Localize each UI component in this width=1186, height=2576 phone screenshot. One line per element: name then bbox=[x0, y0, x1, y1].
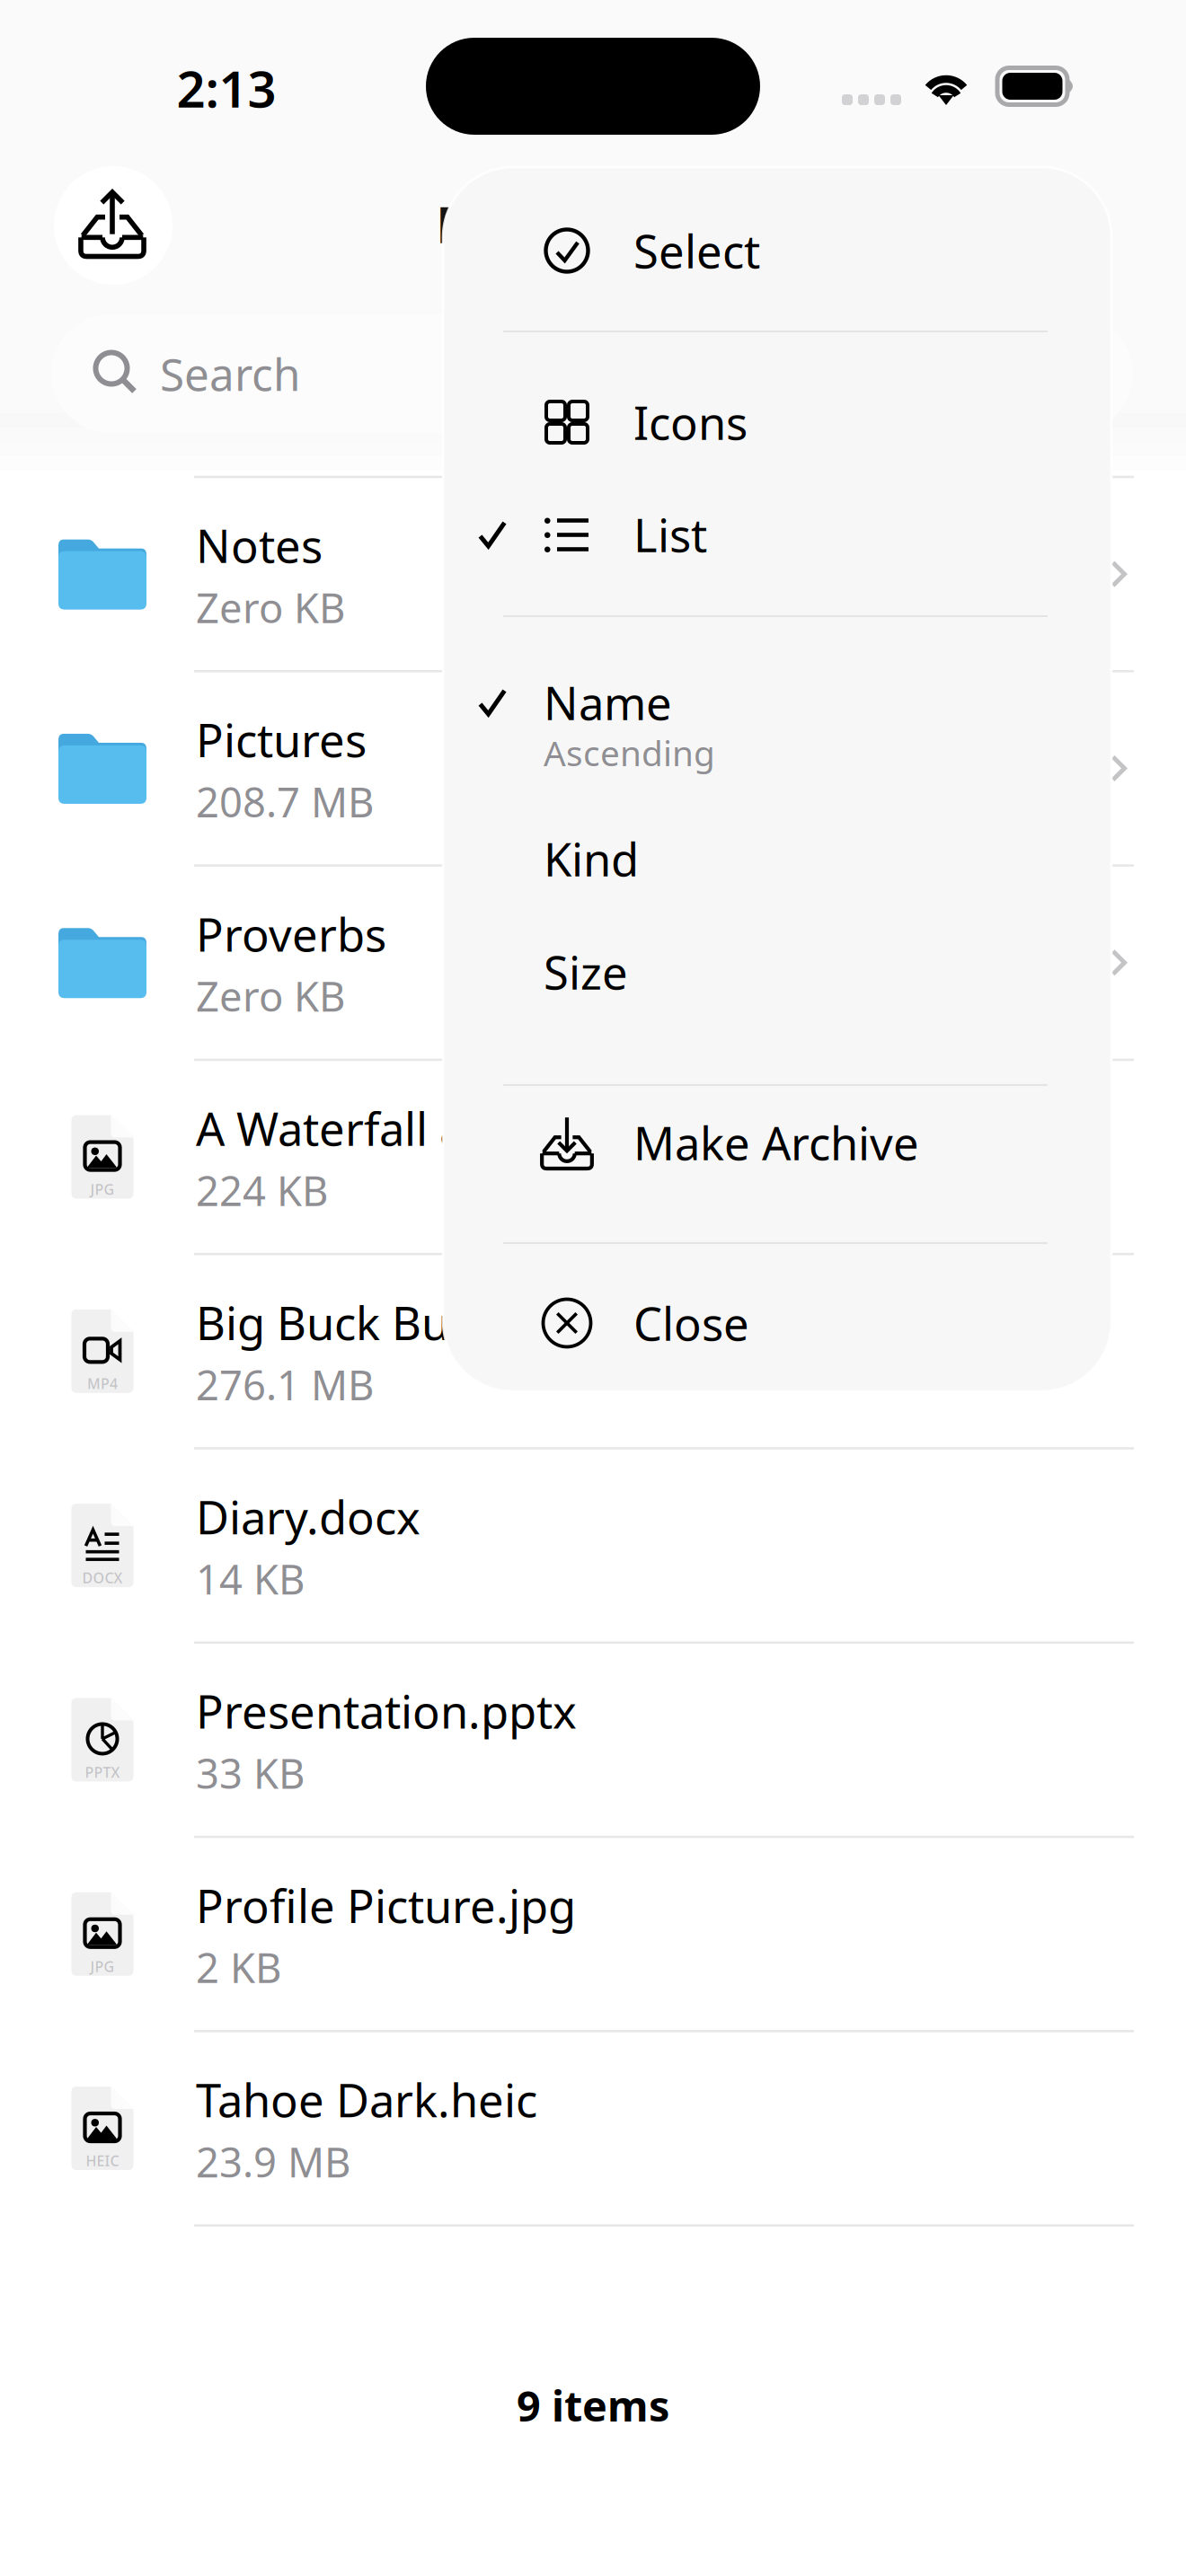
staticText: Name bbox=[544, 672, 672, 733]
staticText: 9 items bbox=[517, 2378, 669, 2433]
staticText: 224 KB bbox=[196, 1163, 328, 1217]
button[interactable]: DOCX bbox=[0, 0, 1186, 2576]
staticText: Pictures bbox=[196, 709, 367, 770]
staticText: 2 KB bbox=[196, 1940, 281, 1994]
button[interactable]: List bbox=[0, 0, 1186, 2576]
staticText: Zero KB bbox=[196, 580, 345, 634]
staticText: JPG bbox=[90, 1957, 115, 1976]
staticText: Make Archive bbox=[633, 1112, 919, 1173]
staticText: 276.1 MB bbox=[196, 1357, 374, 1411]
staticText: DOCX bbox=[82, 1568, 123, 1587]
button[interactable]: Size bbox=[0, 0, 1186, 2576]
staticText: Diary.docx bbox=[196, 1486, 420, 1547]
button[interactable]: Make Archive bbox=[54, 166, 173, 285]
staticText: Select bbox=[633, 220, 760, 281]
staticText: A Waterfall at Dusk.jpg bbox=[196, 1098, 679, 1158]
button[interactable]: JPG bbox=[0, 0, 1186, 2576]
staticText: Proverbs bbox=[196, 904, 386, 964]
staticText: Close bbox=[633, 1293, 749, 1353]
staticText: 208.7 MB bbox=[196, 775, 374, 829]
staticText: JPG bbox=[90, 1180, 115, 1199]
button[interactable]: Close bbox=[0, 0, 1186, 2576]
staticText: 14 KB bbox=[196, 1552, 305, 1606]
button[interactable]: Search bbox=[51, 314, 1133, 433]
button[interactable]: MP4 bbox=[0, 0, 1186, 2576]
staticText: Presentation.pptx bbox=[196, 1681, 577, 1741]
staticText: MP4 bbox=[87, 1374, 118, 1393]
staticText: Tahoe Dark.heic bbox=[196, 2069, 537, 2130]
button[interactable]: Proverbs bbox=[0, 0, 1186, 2576]
staticText: Icons bbox=[633, 392, 748, 452]
staticText: Ascending bbox=[544, 730, 715, 776]
staticText: Profile Picture.jpg bbox=[196, 1875, 576, 1936]
button[interactable]: HEIC bbox=[0, 0, 1186, 2576]
staticText: Big Buck Bunny.mp4 bbox=[196, 1292, 635, 1353]
staticText: List bbox=[633, 504, 707, 565]
staticText: Kind bbox=[544, 828, 639, 889]
staticText: PPTX bbox=[85, 1763, 120, 1782]
staticText: 23.9 MB bbox=[196, 2134, 350, 2189]
button[interactable]: PPTX bbox=[0, 0, 1186, 2576]
button[interactable]: Pictures bbox=[0, 0, 1186, 2576]
button[interactable]: JPG bbox=[0, 0, 1186, 2576]
staticText: 2:13 bbox=[177, 55, 276, 121]
button[interactable]: Icons bbox=[0, 0, 1186, 2576]
staticText: Search bbox=[160, 344, 300, 403]
staticText: 33 KB bbox=[196, 1746, 305, 1800]
staticText: Size bbox=[544, 942, 628, 1002]
button[interactable]: Make Archive bbox=[0, 0, 1186, 2576]
button[interactable]: Name bbox=[0, 0, 1186, 2576]
staticText: HEIC bbox=[86, 2151, 119, 2170]
staticText: Zero KB bbox=[196, 969, 345, 1023]
staticText: Notes bbox=[196, 515, 323, 576]
button[interactable]: Kind bbox=[0, 0, 1186, 2576]
staticText: My Files bbox=[436, 190, 634, 257]
button[interactable]: Notes bbox=[0, 0, 1186, 2576]
button[interactable]: Select bbox=[0, 0, 1186, 2576]
